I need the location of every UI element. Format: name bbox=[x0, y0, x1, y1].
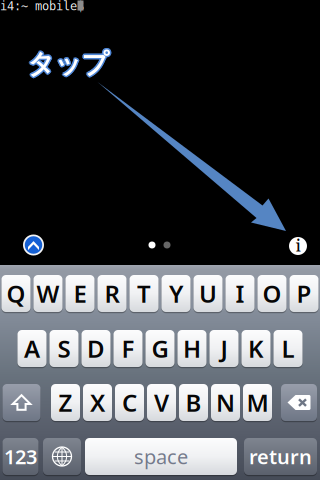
button[interactable]: Next keyboard bbox=[43, 438, 81, 475]
button[interactable]: S bbox=[49, 330, 78, 367]
button[interactable]: X bbox=[83, 384, 112, 421]
button[interactable]: Shift bbox=[2, 384, 40, 421]
staticText: V bbox=[154, 387, 169, 418]
button[interactable]: E bbox=[65, 275, 94, 312]
staticText: Y bbox=[169, 278, 183, 309]
staticText: H bbox=[183, 333, 201, 364]
button[interactable]: space bbox=[85, 438, 237, 475]
staticText: O bbox=[262, 278, 281, 309]
button[interactable]: O bbox=[257, 275, 286, 312]
staticText: I bbox=[235, 278, 244, 309]
staticText: タップ bbox=[26, 48, 107, 80]
button[interactable]: Q bbox=[1, 275, 30, 312]
button[interactable]: W bbox=[33, 275, 62, 312]
button[interactable]: V bbox=[147, 384, 176, 421]
staticText: タップ bbox=[27, 46, 108, 79]
staticText: B bbox=[185, 387, 201, 418]
button[interactable]: 123 bbox=[2, 438, 38, 475]
button[interactable]: I bbox=[225, 275, 254, 312]
staticText: タップ bbox=[27, 48, 108, 80]
button[interactable]: Delete bbox=[281, 384, 317, 421]
staticText: P bbox=[296, 278, 311, 309]
staticText: space bbox=[134, 443, 188, 470]
staticText: タップ bbox=[26, 49, 107, 81]
staticText: Z bbox=[58, 387, 72, 418]
staticText: U bbox=[199, 278, 217, 309]
button[interactable]: F bbox=[113, 330, 142, 367]
button[interactable]: H bbox=[177, 330, 206, 367]
staticText: X bbox=[90, 387, 105, 418]
button[interactable]: N bbox=[211, 384, 240, 421]
staticText: A bbox=[24, 333, 40, 364]
staticText: J bbox=[220, 333, 227, 364]
staticText: i4:~ mobile$ bbox=[0, 0, 84, 13]
button[interactable]: Info bbox=[286, 234, 310, 258]
button[interactable]: M bbox=[243, 384, 272, 421]
staticText: タップ bbox=[29, 48, 110, 80]
staticText: D bbox=[87, 333, 105, 364]
button[interactable]: Show toolbar bbox=[20, 232, 46, 258]
button[interactable]: J bbox=[209, 330, 238, 367]
button[interactable]: G bbox=[145, 330, 174, 367]
staticText: W bbox=[36, 278, 59, 309]
button[interactable]: A bbox=[17, 330, 46, 367]
staticText: L bbox=[281, 333, 294, 364]
button[interactable]: T bbox=[129, 275, 158, 312]
button[interactable]: D bbox=[81, 330, 110, 367]
button[interactable]: Y bbox=[161, 275, 190, 312]
staticText: E bbox=[73, 278, 86, 309]
staticText: C bbox=[122, 387, 137, 418]
staticText: F bbox=[121, 333, 134, 364]
button[interactable]: P bbox=[289, 275, 318, 312]
staticText: T bbox=[137, 278, 151, 309]
staticText: タップ bbox=[26, 46, 107, 79]
staticText: Q bbox=[6, 278, 25, 309]
staticText: R bbox=[104, 278, 119, 309]
button[interactable]: L bbox=[273, 330, 302, 367]
button[interactable]: Z bbox=[51, 384, 80, 421]
button[interactable]: R bbox=[97, 275, 126, 312]
staticText: return bbox=[249, 443, 312, 470]
staticText: M bbox=[246, 387, 268, 418]
staticText: タップ bbox=[27, 49, 108, 82]
button[interactable]: C bbox=[115, 384, 144, 421]
staticText: 123 bbox=[4, 443, 37, 470]
button[interactable]: return bbox=[244, 438, 317, 475]
staticText: S bbox=[57, 333, 70, 364]
staticText: N bbox=[216, 387, 235, 418]
staticText: i bbox=[295, 234, 300, 258]
staticText: K bbox=[248, 333, 264, 364]
button[interactable]: B bbox=[179, 384, 208, 421]
staticText: G bbox=[151, 333, 168, 364]
staticText: タップ bbox=[29, 49, 110, 81]
button[interactable]: U bbox=[193, 275, 222, 312]
staticText: タップ bbox=[29, 46, 110, 79]
button[interactable]: K bbox=[241, 330, 270, 367]
